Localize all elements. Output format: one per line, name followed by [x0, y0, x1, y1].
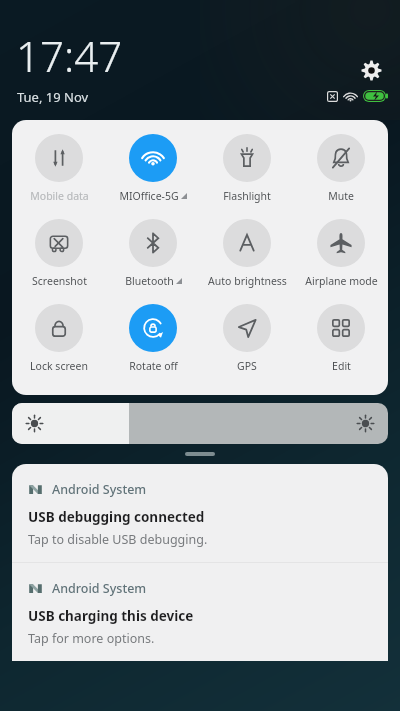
- staticText: Auto brightness: [208, 274, 287, 288]
- button[interactable]: Rotate off: [106, 300, 200, 377]
- button[interactable]: Bluetooth: [106, 215, 200, 292]
- button[interactable]: Android System: [12, 464, 388, 562]
- button[interactable]: MIOffice-5G: [106, 130, 200, 207]
- staticText: Mute: [328, 189, 354, 203]
- staticText: USB debugging connected: [28, 508, 205, 526]
- button[interactable]: Flashlight: [200, 130, 294, 207]
- staticText: Edit: [332, 359, 351, 373]
- staticText: Flashlight: [223, 189, 271, 203]
- button[interactable]: Brightness: [12, 403, 388, 444]
- staticText: Bluetooth: [125, 274, 174, 288]
- button[interactable]: Mute: [294, 130, 388, 207]
- button[interactable]: Settings: [356, 55, 386, 85]
- staticText: Rotate off: [129, 359, 178, 373]
- staticText: MIOffice-5G: [119, 189, 179, 203]
- staticText: Airplane mode: [305, 274, 378, 288]
- staticText: USB charging this device: [28, 607, 194, 625]
- staticText: Tap for more options.: [28, 630, 155, 647]
- staticText: Lock screen: [30, 359, 88, 373]
- staticText: Screenshot: [32, 274, 87, 288]
- staticText: Tue, 19 Nov: [17, 88, 89, 106]
- button[interactable]: Mobile data: [12, 130, 106, 207]
- button[interactable]: GPS: [200, 300, 294, 377]
- staticText: Android System: [52, 580, 147, 597]
- staticText: Android System: [52, 481, 147, 498]
- staticText: GPS: [237, 359, 257, 373]
- button[interactable]: Auto brightness: [200, 215, 294, 292]
- button[interactable]: Android System: [12, 563, 388, 661]
- staticText: 17:47: [16, 27, 123, 84]
- button[interactable]: Screenshot: [12, 215, 106, 292]
- button[interactable]: Airplane mode: [294, 215, 388, 292]
- staticText: Mobile data: [30, 189, 89, 203]
- button[interactable]: Edit: [294, 300, 388, 377]
- staticText: Tap to disable USB debugging.: [28, 531, 208, 548]
- button[interactable]: Lock screen: [12, 300, 106, 377]
